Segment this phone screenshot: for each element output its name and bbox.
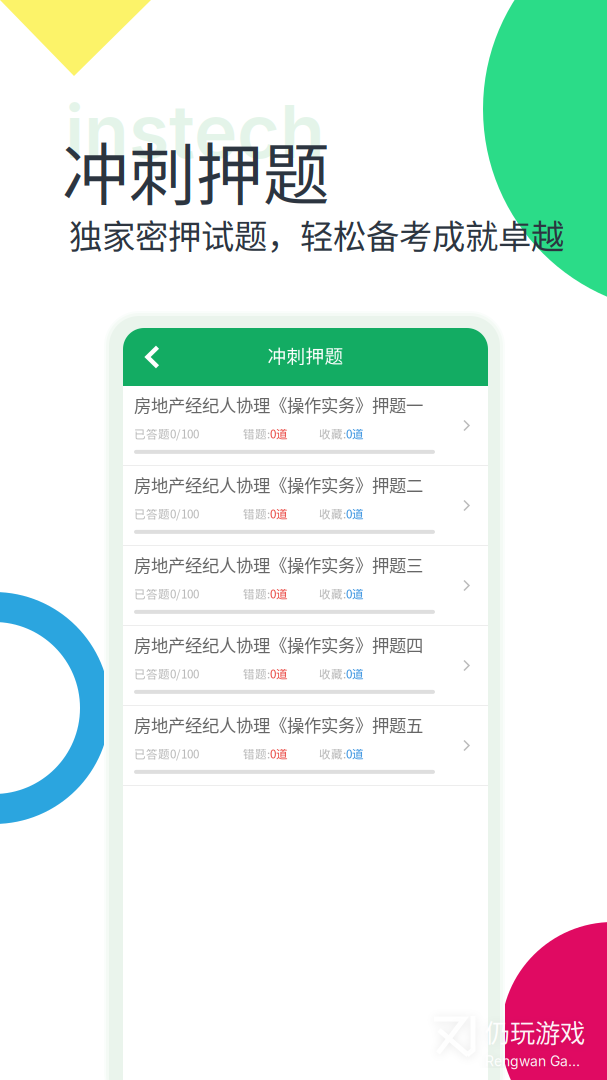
staticText: 错题: [243,505,270,522]
staticText: 房地产经纪人协理《操作实务》押题一 [134,392,423,417]
staticText: 0道 [346,745,364,762]
staticText: 0道 [270,745,288,762]
staticText: 收藏: [319,745,346,762]
staticText: 0道 [270,665,288,682]
staticText: 房地产经纪人协理《操作实务》押题三 [134,552,423,577]
staticText: instech [65,87,325,176]
staticText: 冲刺押题 [62,122,330,218]
staticText: 0道 [270,505,288,522]
staticText: 已答题0/100 [134,505,199,522]
staticText: 房地产经纪人协理《操作实务》押题四 [134,632,423,657]
staticText: 房地产经纪人协理《操作实务》押题五 [134,712,423,737]
staticText: 0道 [270,585,288,602]
staticText: 0道 [346,425,364,442]
staticText: 仍玩游戏 [485,1013,585,1050]
staticText: 已答题0/100 [134,585,199,602]
staticText: 错题: [243,585,270,602]
staticText: 0道 [346,665,364,682]
button[interactable]: 房地产经纪人协理《操作实务》押题四 [123,626,488,705]
staticText: 独家密押试题，轻松备考成就卓越 [69,210,564,258]
staticText: 收藏: [319,585,346,602]
button[interactable]: 房地产经纪人协理《操作实务》押题一 [123,386,488,465]
button[interactable]: 返回 [123,328,183,386]
staticText: 0道 [346,505,364,522]
staticText: 0道 [270,425,288,442]
staticText: 收藏: [319,665,346,682]
staticText: 收藏: [319,425,346,442]
button[interactable]: 房地产经纪人协理《操作实务》押题三 [123,546,488,625]
staticText: 0道 [346,585,364,602]
staticText: 错题: [243,745,270,762]
staticText: 收藏: [319,505,346,522]
button[interactable]: 房地产经纪人协理《操作实务》押题二 [123,466,488,545]
button[interactable]: 房地产经纪人协理《操作实务》押题五 [123,706,488,785]
staticText: 已答题0/100 [134,425,199,442]
staticText: 房地产经纪人协理《操作实务》押题二 [134,472,423,497]
staticText: 已答题0/100 [134,745,199,762]
staticText: 错题: [243,665,270,682]
staticText: Rengwan Games [485,1053,585,1070]
staticText: 错题: [243,425,270,442]
staticText: 已答题0/100 [134,665,199,682]
staticText: 冲刺押题 [267,341,343,368]
